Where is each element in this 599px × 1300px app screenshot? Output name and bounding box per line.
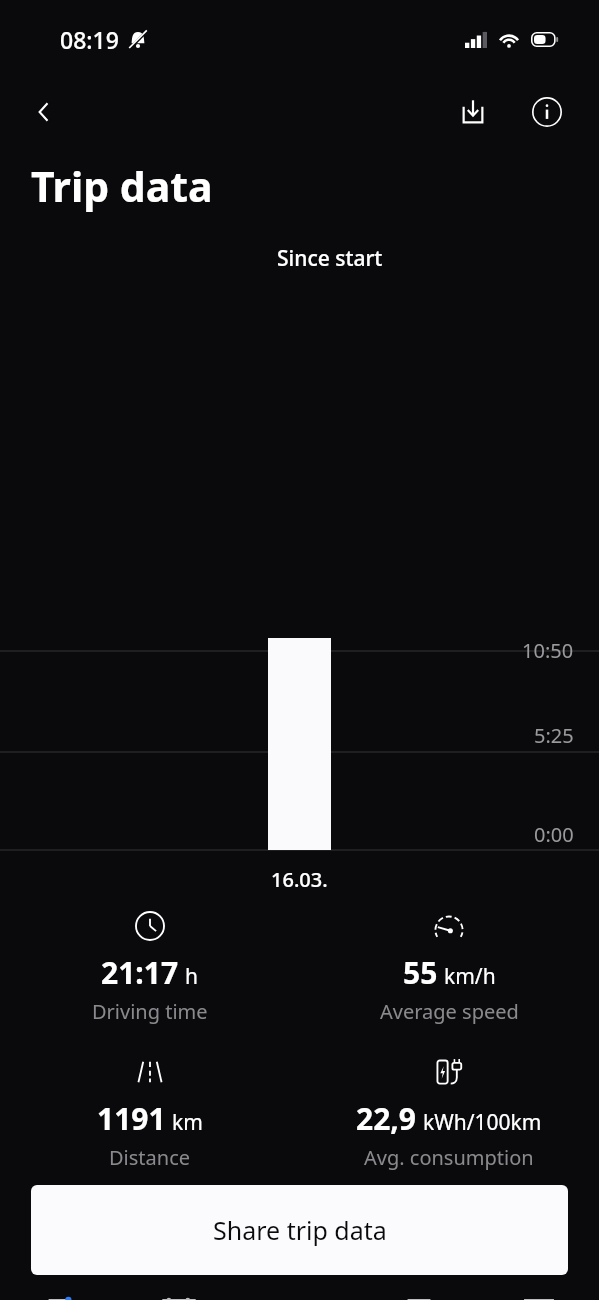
staticText: km/h	[444, 962, 496, 991]
staticText: Trip ended: 16. March 2026 at 07:34	[31, 1299, 383, 1300]
button[interactable]: 21:17	[0, 909, 299, 1025]
staticText: kWh/100km	[423, 1108, 542, 1137]
button[interactable]: Back	[20, 88, 68, 136]
staticText: Trip data	[31, 158, 213, 214]
button[interactable]: Share trip data	[31, 1185, 568, 1275]
staticText: 5:25	[534, 722, 574, 749]
staticText: Avg. consumption	[364, 1144, 534, 1171]
staticText: 0:00	[534, 821, 574, 848]
staticText: 16.03.	[271, 866, 328, 887]
button[interactable]: 22,9	[299, 1055, 599, 1171]
button[interactable]: 1191	[0, 1055, 299, 1171]
staticText: 21:17	[101, 952, 179, 993]
staticText: h	[185, 962, 198, 991]
staticText: km	[172, 1108, 203, 1137]
staticText: Since start	[277, 244, 383, 273]
staticText: Distance	[109, 1144, 191, 1171]
staticText: 1191	[97, 1098, 166, 1139]
staticText: 10:50	[522, 637, 574, 664]
staticText: Share trip data	[213, 1213, 387, 1247]
button[interactable]: Information	[523, 88, 571, 136]
button[interactable]: Since start	[60, 244, 599, 286]
staticText: 55	[403, 952, 438, 993]
staticText: Driving time	[92, 998, 208, 1025]
staticText: 08:19	[60, 24, 119, 55]
button[interactable]: 55	[299, 909, 599, 1025]
button[interactable]: Download	[449, 88, 497, 136]
staticText: 22,9	[356, 1098, 417, 1139]
staticText: Average speed	[380, 998, 519, 1025]
